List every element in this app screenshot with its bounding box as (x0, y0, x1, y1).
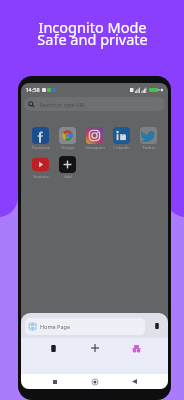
button[interactable]: Search or type URL (24, 97, 165, 111)
staticText: Instagram (85, 145, 105, 150)
button[interactable]: Tabs (44, 339, 62, 357)
staticText: Twitter (142, 145, 156, 150)
button[interactable]: Youtube (27, 156, 54, 179)
staticText: 14:58 (25, 86, 40, 93)
staticText: Youtube (33, 174, 49, 179)
button[interactable]: Close tab (150, 319, 164, 333)
staticText: Home Page (40, 323, 70, 330)
button[interactable]: Back (128, 375, 141, 388)
button[interactable]: LinkedIn (108, 127, 135, 150)
staticText: Facebook (32, 145, 50, 150)
button[interactable]: Add (54, 156, 81, 179)
button[interactable]: Home (88, 375, 101, 388)
button[interactable]: Incognito mode (127, 339, 145, 357)
button[interactable]: Recents (48, 375, 61, 388)
staticText: Incognito Mode (38, 17, 147, 37)
button[interactable]: Facebook (27, 127, 54, 150)
button[interactable]: Instagram (81, 127, 108, 150)
staticText: Google (61, 145, 75, 150)
button[interactable]: Home Page (28, 318, 142, 335)
staticText: Add (64, 174, 72, 179)
staticText: Safe and private (37, 29, 148, 49)
button[interactable]: Twitter (135, 127, 162, 150)
button[interactable]: New tab (86, 339, 104, 357)
staticText: LinkedIn (113, 145, 130, 150)
staticText: Search or type URL (39, 101, 86, 108)
button[interactable]: Google (54, 127, 81, 150)
